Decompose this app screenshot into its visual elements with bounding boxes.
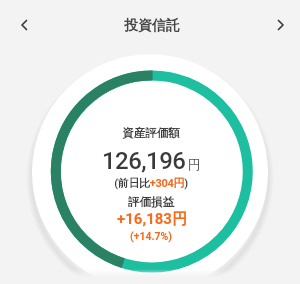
staticText: 資産評価額: [1, 126, 300, 140]
button[interactable]: [260, 9, 292, 41]
staticText: 126,196 円: [1, 147, 300, 175]
staticText: 投資信託: [2, 17, 300, 35]
staticText: 評価損益: [1, 195, 300, 209]
staticText: (前日比+304円): [1, 176, 300, 190]
staticText: +16,183円: [2, 210, 300, 229]
button[interactable]: [8, 9, 40, 41]
staticText: (+14.7%): [1, 230, 300, 242]
